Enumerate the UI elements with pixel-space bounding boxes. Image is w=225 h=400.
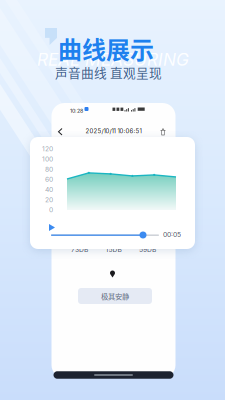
button[interactable]: Back [54,124,66,139]
button[interactable]: 极其安静 [78,288,152,304]
staticText: 曲线展示 [58,31,154,66]
staticText: 2025/10/11 10:06:51 [85,127,141,135]
staticText: 20 [45,196,53,204]
staticText: 73DB [71,245,88,254]
staticText: 极其安静 [101,291,129,301]
staticText: 80 [45,165,53,173]
staticText: REAL MEASURING [37,49,189,70]
staticText: 00:05 [163,230,181,239]
staticText: 0 [49,206,53,214]
staticText: 60 [45,175,53,183]
staticText: 100 [42,155,53,163]
staticText: 59DB [139,245,156,254]
staticText: 声音曲线 直观呈现 [55,63,162,81]
staticText: 120 [42,145,53,153]
button[interactable]: Delete [156,125,169,139]
staticText: 40 [45,185,53,194]
button[interactable]: Play [45,220,59,235]
staticText: 10:28 [70,107,83,114]
staticText: 15DB [105,245,121,254]
